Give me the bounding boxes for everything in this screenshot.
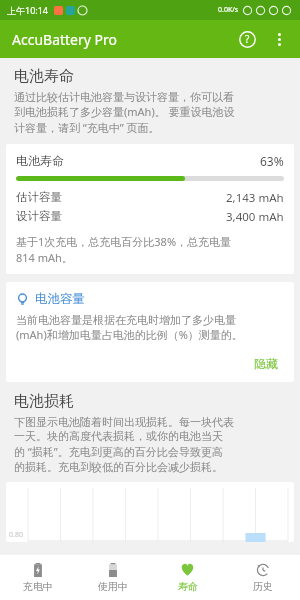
staticText: 下图显示电池随着时间出现损耗。每一块代表 一天。块的高度代表损耗，或你的电池当天… [14, 415, 234, 474]
button[interactable]: 历史 [225, 555, 300, 600]
staticText: 电池损耗 [14, 392, 74, 411]
staticText: 通过比较估计电池容量与设计容量，你可以看 到电池损耗了多少容量(mAh)。 要重… [14, 90, 235, 135]
staticText: 3,400 mAh [226, 209, 284, 225]
staticText: 0.80 [9, 530, 23, 540]
staticText: AccuBattery Pro [12, 30, 117, 49]
button[interactable]: Help [230, 22, 264, 56]
staticText: 当前电池容量是根据在充电时增加了多少电量 (mAh)和增加电量占电池的比例（%）… [16, 313, 243, 342]
staticText: 上午10:14 [7, 4, 49, 16]
button[interactable]: 电池寿命 [6, 144, 294, 274]
staticText: 0.0K/s [218, 5, 239, 15]
staticText: 估计容量 [16, 190, 62, 204]
button[interactable]: 寿命 [150, 555, 225, 600]
button[interactable]: 使用中 [75, 555, 150, 600]
staticText: 63% [260, 153, 284, 169]
staticText: 充电中 [23, 580, 53, 593]
staticText: 基于1次充电，总充电百分比38%，总充电量 814 mAh。 [16, 234, 232, 265]
staticText: 设计容量 [16, 209, 62, 223]
staticText: 电池寿命 [16, 153, 64, 168]
button[interactable]: More options [264, 24, 294, 54]
staticText: 电池寿命 [14, 67, 74, 86]
staticText: 历史 [253, 580, 273, 593]
staticText: ? [245, 32, 250, 46]
staticText: 2,143 mAh [226, 190, 284, 206]
staticText: 隐藏 [254, 356, 278, 371]
button[interactable]: 充电中 [0, 555, 75, 600]
staticText: 电池容量 [35, 291, 85, 307]
staticText: 寿命 [178, 580, 198, 593]
staticText: 使用中 [98, 580, 128, 593]
button[interactable]: 隐藏 [248, 354, 284, 373]
